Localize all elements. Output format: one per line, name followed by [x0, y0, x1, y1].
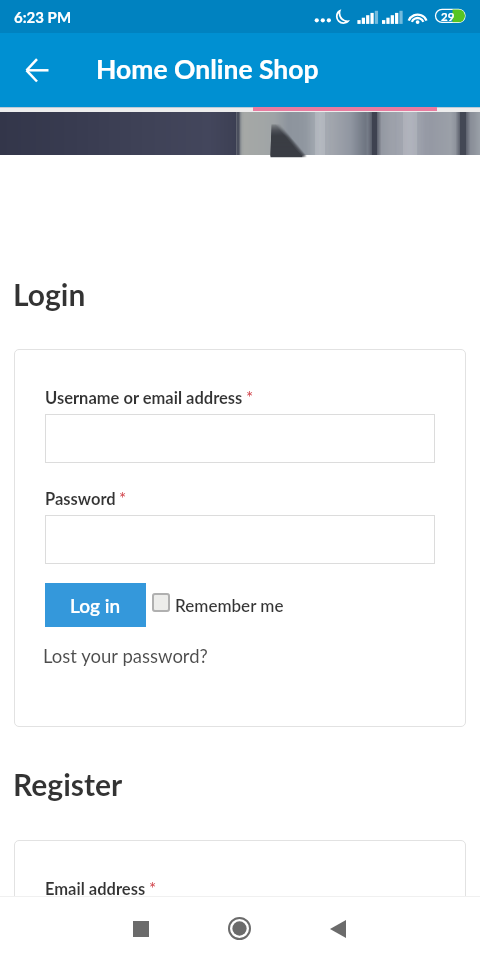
button[interactable]: Log in [45, 583, 146, 627]
button[interactable]: Lost your password? [43, 645, 208, 667]
staticText: * [246, 387, 254, 407]
button[interactable]: Remember me [152, 595, 284, 615]
staticText: 6:23 PM [14, 8, 72, 26]
button[interactable]: Back [297, 897, 378, 960]
staticText: Remember me [175, 595, 284, 615]
staticText: Username or email address [45, 388, 243, 408]
staticText: Home Online Shop [96, 53, 319, 85]
button[interactable]: Back [14, 47, 61, 94]
button[interactable]: Recent apps [100, 897, 181, 960]
button[interactable]: Home [199, 897, 280, 960]
staticText: Register [13, 766, 123, 802]
button[interactable] [45, 515, 435, 564]
staticText: Log in [70, 594, 121, 617]
staticText: Email address [45, 879, 146, 899]
staticText: Password [45, 489, 116, 509]
staticText: Login [13, 276, 86, 312]
staticText: * [149, 878, 157, 898]
staticText: * [119, 488, 127, 508]
staticText: 29 [441, 10, 455, 24]
button[interactable] [45, 414, 435, 463]
